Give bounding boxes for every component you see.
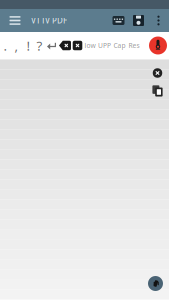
button[interactable]: Clear word <box>72 35 83 55</box>
button[interactable]: Record <box>149 36 167 54</box>
button[interactable]: UPP <box>97 35 112 55</box>
staticText: VTTV PDF <box>31 15 67 26</box>
staticText: , <box>14 37 18 54</box>
button[interactable]: Copy <box>152 85 163 97</box>
button[interactable]: low <box>83 35 97 55</box>
button[interactable]: Keyboard <box>109 9 128 32</box>
button[interactable]: Save <box>128 9 149 32</box>
button[interactable]: ! <box>23 35 34 55</box>
button[interactable]: Speak <box>148 276 163 291</box>
staticText: . <box>3 37 7 54</box>
button[interactable]: ? <box>34 35 45 55</box>
button[interactable]: Backspace <box>58 35 72 55</box>
button[interactable]: New line <box>45 35 58 55</box>
button[interactable]: . <box>1 35 10 55</box>
button[interactable]: Clear <box>152 68 162 78</box>
staticText: ? <box>36 37 42 54</box>
button[interactable]: , <box>10 35 23 55</box>
staticText: Res <box>128 41 139 50</box>
staticText: ! <box>26 37 30 54</box>
button[interactable]: Menu <box>4 9 26 31</box>
button[interactable]: Res <box>127 35 141 55</box>
staticText: low <box>84 41 95 50</box>
staticText: Cap <box>113 41 125 50</box>
button[interactable]: More options <box>149 9 168 32</box>
button[interactable]: Cap <box>112 35 127 55</box>
staticText: UPP <box>98 41 111 50</box>
